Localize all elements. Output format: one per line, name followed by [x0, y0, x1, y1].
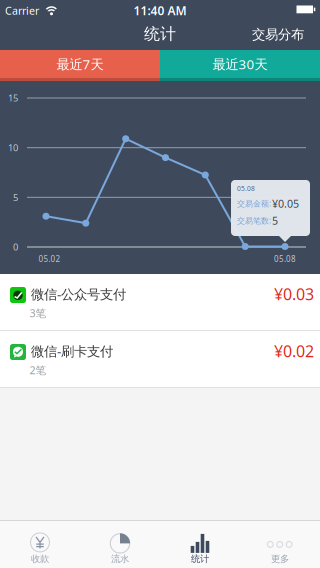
- staticText: 05.02: [38, 254, 60, 264]
- button[interactable]: 统计: [160, 521, 240, 568]
- staticText: 最近30天: [212, 55, 267, 73]
- staticText: 5: [272, 213, 278, 228]
- button[interactable]: 最近7天: [0, 50, 160, 81]
- staticText: 收款: [31, 553, 49, 565]
- staticText: Carrier: [5, 3, 39, 18]
- button[interactable]: 更多: [240, 521, 320, 568]
- staticText: 05.08: [274, 254, 296, 264]
- button[interactable]: 最近30天: [160, 50, 320, 81]
- button[interactable]: 微信-刷卡支付: [0, 331, 320, 387]
- staticText: 10: [8, 141, 18, 154]
- staticText: 05.08: [237, 184, 255, 193]
- staticText: 微信-公众号支付: [31, 285, 126, 303]
- staticText: 11:40 AM: [133, 2, 186, 18]
- staticText: 2笔: [29, 363, 46, 377]
- staticText: ¥0.05: [272, 196, 299, 211]
- staticText: ¥0.03: [274, 283, 314, 305]
- staticText: 5: [13, 191, 18, 203]
- staticText: 统计: [144, 24, 176, 44]
- button[interactable]: 微信-公众号支付: [0, 274, 320, 330]
- staticText: 最近7天: [56, 55, 103, 73]
- staticText: 统计: [191, 553, 209, 565]
- button[interactable]: 流水: [80, 521, 160, 568]
- staticText: 3笔: [29, 306, 46, 320]
- staticText: 0: [13, 241, 18, 253]
- staticText: 交易金额:: [237, 198, 271, 209]
- staticText: 流水: [111, 553, 129, 565]
- staticText: 微信-刷卡支付: [31, 342, 113, 360]
- staticText: 交易分布: [252, 26, 304, 43]
- staticText: ¥0.02: [274, 340, 314, 362]
- staticText: 交易笔数:: [237, 215, 271, 226]
- button[interactable]: 交易分布: [234, 19, 304, 49]
- staticText: 15: [8, 92, 18, 104]
- button[interactable]: 收款: [0, 521, 80, 568]
- staticText: 更多: [271, 553, 289, 565]
